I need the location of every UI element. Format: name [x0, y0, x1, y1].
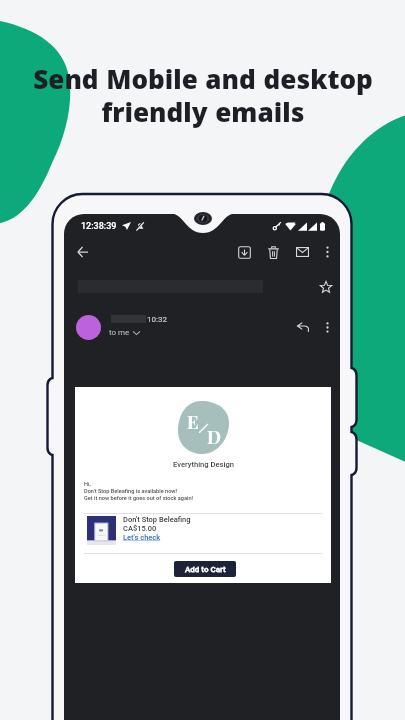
button[interactable]: Reply	[290, 314, 316, 340]
button[interactable]: More options	[314, 239, 340, 265]
staticText: 10:32	[147, 315, 167, 324]
staticText: CA$15.00	[123, 524, 157, 533]
staticText: Let's check	[123, 533, 161, 542]
staticText: Don't Stop Beleafing is available now!	[84, 488, 178, 495]
staticText: Hi,	[84, 481, 91, 488]
staticText: E	[187, 410, 199, 434]
button[interactable]: Star	[313, 274, 339, 300]
button[interactable]: Add to Cart	[174, 561, 236, 577]
button[interactable]: Let's check	[123, 533, 161, 542]
staticText: Send Mobile and desktop friendly emails	[33, 61, 373, 139]
button[interactable]: Mark unread	[289, 239, 315, 265]
staticText: to me	[109, 328, 130, 337]
staticText: Everything Design	[173, 460, 234, 469]
button[interactable]: Archive	[231, 239, 257, 265]
staticText: 12:38:39	[81, 221, 117, 232]
staticText: Add to Cart	[185, 565, 226, 574]
staticText: Don't Stop Beleafing	[123, 515, 191, 524]
staticText: D	[207, 425, 221, 449]
button[interactable]: Delete	[260, 239, 286, 265]
button[interactable]: Back	[69, 239, 95, 265]
staticText: Get it now before it goes out of stock a…	[84, 495, 194, 502]
button[interactable]: More options	[314, 314, 340, 340]
